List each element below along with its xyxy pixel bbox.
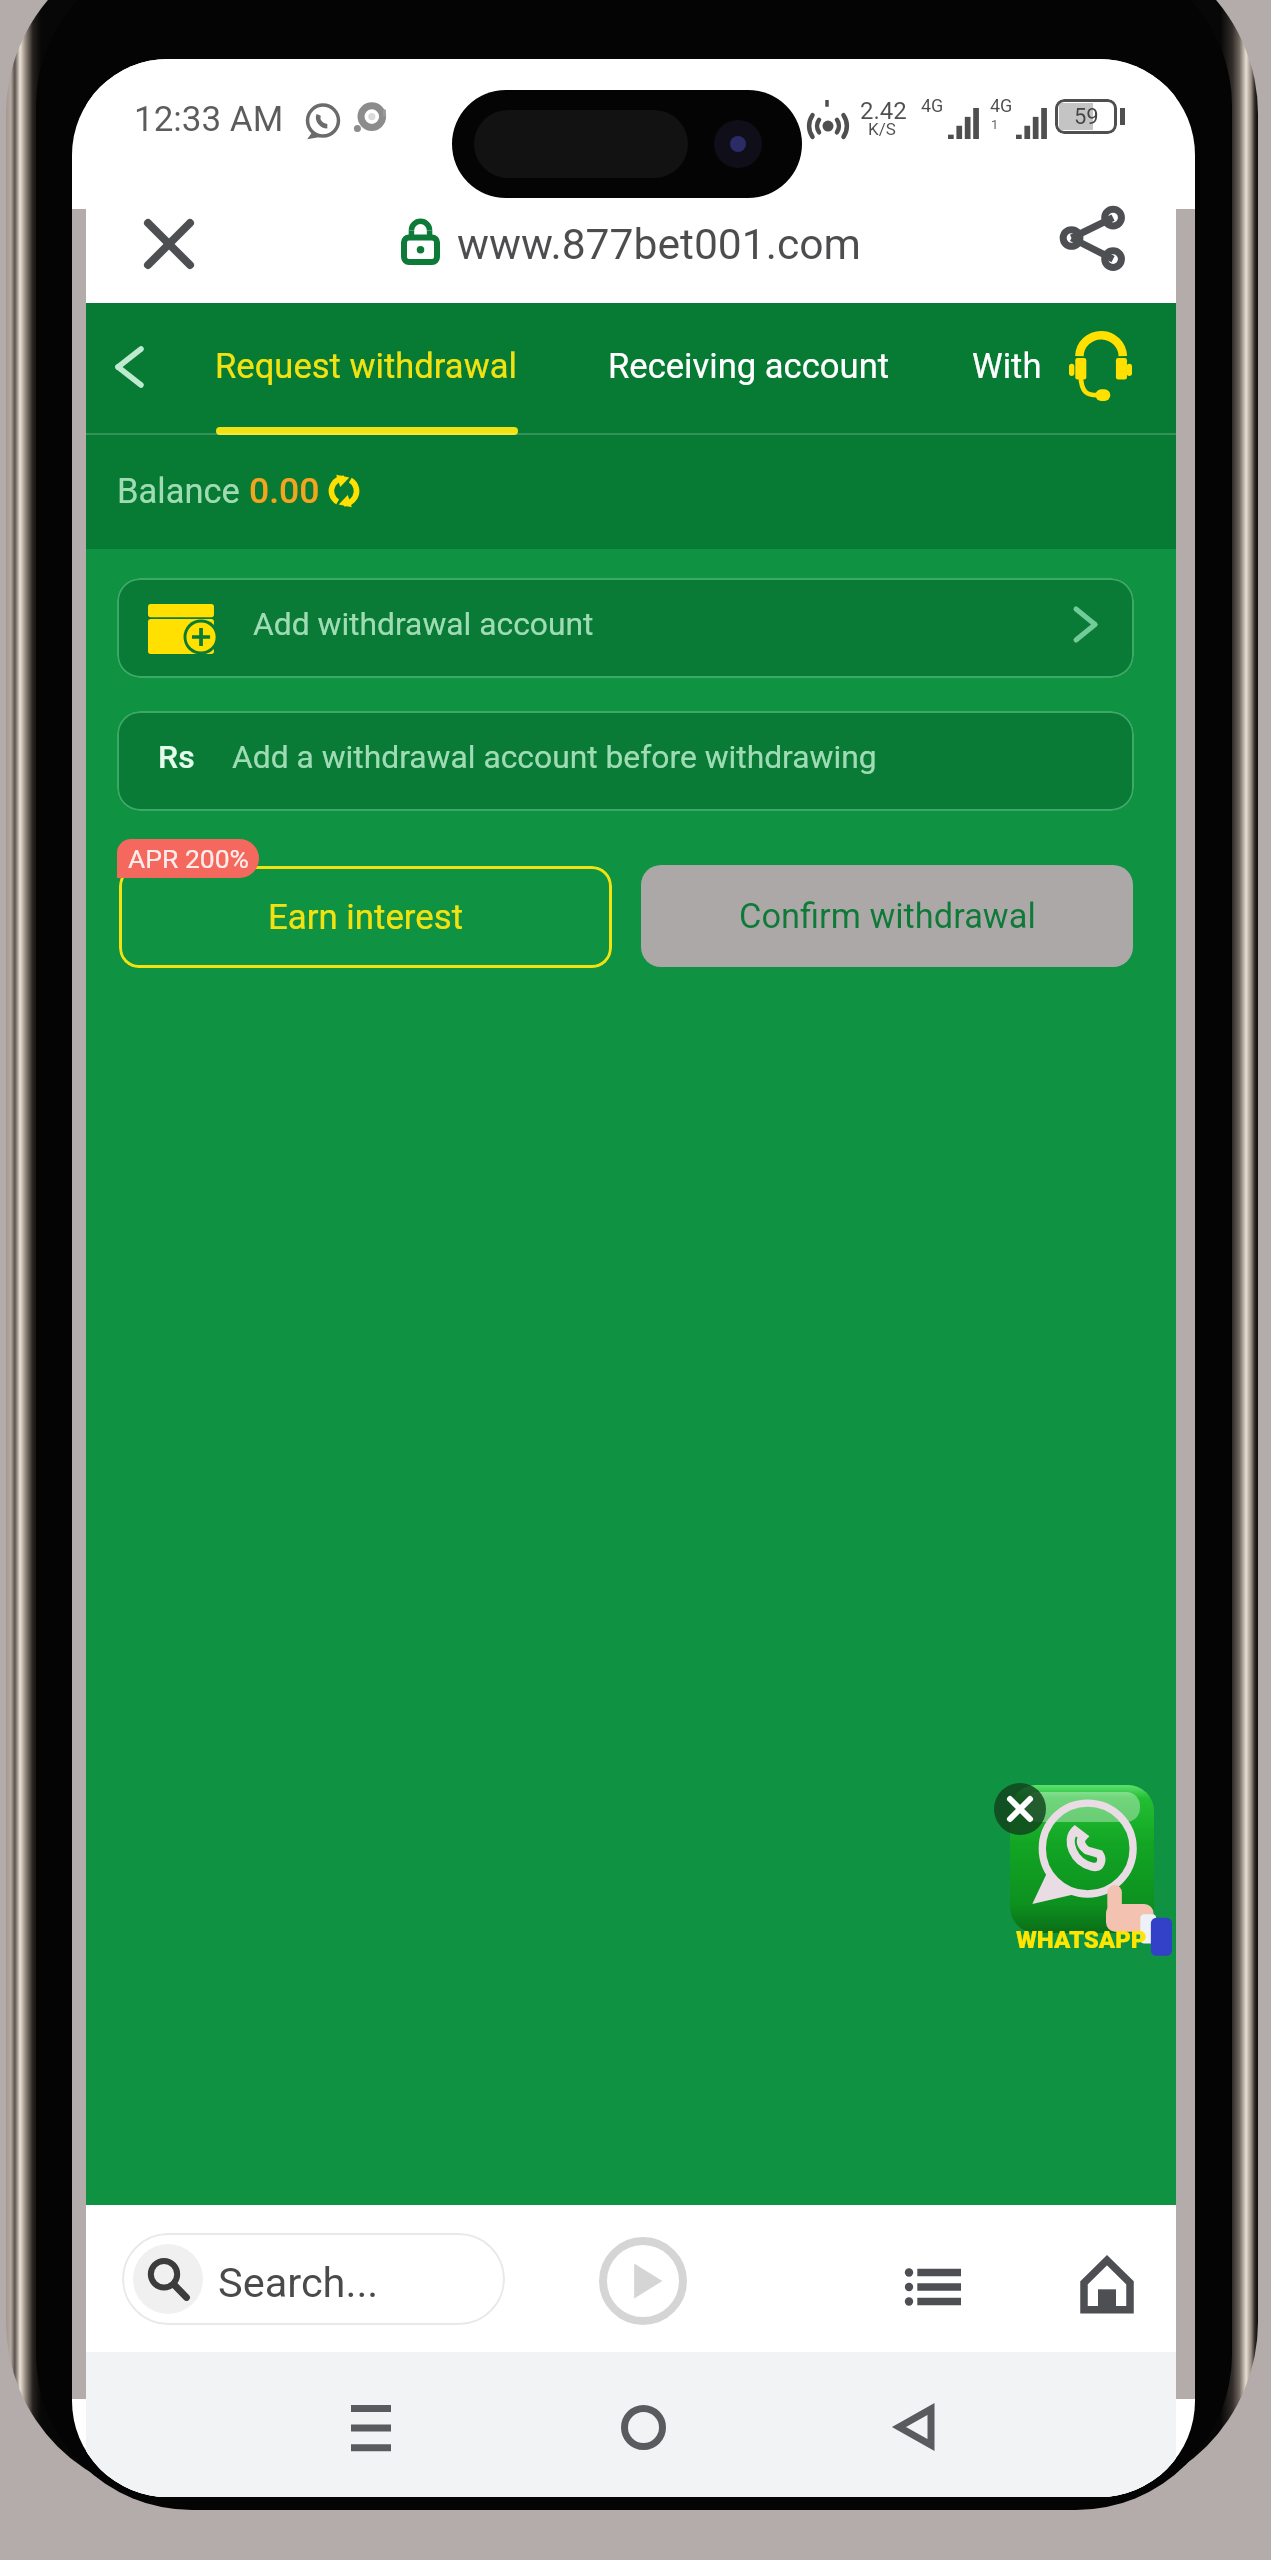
button[interactable]: Home: [597, 2381, 689, 2473]
button[interactable]: Recents: [325, 2381, 417, 2473]
button[interactable]: Back: [869, 2381, 961, 2473]
staticText: 4G: [990, 95, 1013, 116]
button[interactable]: Share: [1046, 192, 1138, 284]
button[interactable]: With: [952, 303, 1072, 429]
button[interactable]: Back: [74, 307, 184, 427]
staticText: 59: [1074, 104, 1099, 130]
button[interactable]: Add withdrawal account: [117, 578, 1134, 678]
button[interactable]: Close: [994, 1783, 1046, 1835]
button[interactable]: Tabs: [889, 2241, 977, 2329]
staticText: Earn interest: [268, 897, 464, 938]
button[interactable]: Confirm withdrawal: [641, 865, 1133, 967]
staticText: Search...: [218, 2258, 379, 2307]
staticText: Receiving account: [608, 346, 890, 387]
staticText: 1: [991, 117, 999, 132]
staticText: APR 200%: [128, 843, 249, 874]
staticText: WHATSAPP: [1016, 1926, 1147, 1954]
staticText: 0.00: [249, 470, 320, 512]
button[interactable]: Close: [123, 198, 215, 290]
staticText: K/S: [868, 119, 896, 139]
staticText: www.877bet001.com: [457, 219, 861, 269]
button[interactable]: WhatsApp: [1010, 1785, 1154, 1933]
staticText: 4G: [921, 95, 944, 116]
staticText: Rs: [158, 738, 195, 776]
staticText: With: [972, 346, 1042, 387]
button[interactable]: Rs: [117, 711, 1134, 811]
button[interactable]: Request withdrawal: [206, 303, 526, 429]
staticText: Add a withdrawal account before withdraw…: [232, 738, 877, 775]
button[interactable]: Receiving account: [591, 303, 907, 429]
button[interactable]: Customer service: [1054, 319, 1146, 411]
staticText: 2.42: [860, 97, 907, 125]
staticText: Add withdrawal account: [253, 605, 594, 642]
button[interactable]: Search...: [122, 2233, 505, 2325]
staticText: 12:33 AM: [134, 99, 284, 140]
staticText: Confirm withdrawal: [739, 896, 1036, 936]
staticText: Request withdrawal: [215, 346, 517, 387]
staticText: Balance: [117, 471, 249, 511]
button[interactable]: Play: [599, 2237, 687, 2325]
button[interactable]: Home: [1063, 2241, 1151, 2329]
button[interactable]: Earn interest: [119, 866, 612, 968]
